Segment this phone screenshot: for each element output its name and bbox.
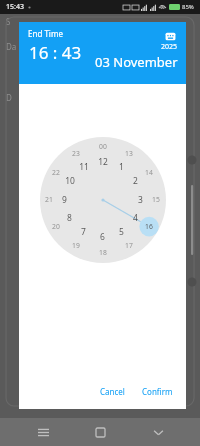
staticText: 00 <box>99 142 107 151</box>
staticText: 14 <box>145 168 153 177</box>
staticText: 19 <box>72 241 80 250</box>
staticText: 22 <box>52 168 60 177</box>
staticText: 11 <box>79 161 89 173</box>
staticText: 12 <box>98 156 108 168</box>
staticText: 4 <box>133 212 138 224</box>
button[interactable]: Switch to keyboard input <box>162 28 178 44</box>
staticText: 16 <box>145 222 153 231</box>
staticText: 20 <box>52 222 60 231</box>
staticText: 13 <box>125 149 133 158</box>
staticText: 6 <box>100 231 105 243</box>
staticText: 03 November <box>95 53 178 71</box>
button[interactable]: Cancel <box>93 382 132 401</box>
staticText: 23 <box>72 149 80 158</box>
staticText: Da <box>6 41 17 52</box>
staticText: Cancel <box>100 386 125 397</box>
staticText: 3 <box>138 194 143 206</box>
staticText: 9 <box>62 194 67 206</box>
staticText: 2 <box>133 175 138 187</box>
staticText: 16 : 43 <box>29 41 82 64</box>
staticText: 1 <box>119 161 124 173</box>
staticText: 15 <box>152 195 160 204</box>
staticText: 10 <box>65 175 75 187</box>
staticText: S <box>6 16 11 27</box>
button[interactable]: Home <box>85 418 115 446</box>
staticText: 21 <box>45 195 53 204</box>
staticText: End Time <box>28 28 63 39</box>
staticText: 7 <box>81 226 86 238</box>
staticText: 18 <box>99 248 107 257</box>
button[interactable]: Confirm <box>135 382 180 401</box>
button[interactable]: Recents <box>28 418 58 446</box>
button[interactable]: 12 <box>40 137 166 263</box>
staticText: D <box>6 92 12 103</box>
staticText: 17 <box>125 241 133 250</box>
staticText: 8 <box>67 212 72 224</box>
staticText: 15:43 <box>6 2 24 12</box>
staticText: 85% <box>182 3 194 11</box>
staticText: 5 <box>119 226 124 238</box>
staticText: 2025 <box>161 42 178 52</box>
staticText: Confirm <box>142 386 173 397</box>
button[interactable]: Back <box>143 418 173 446</box>
